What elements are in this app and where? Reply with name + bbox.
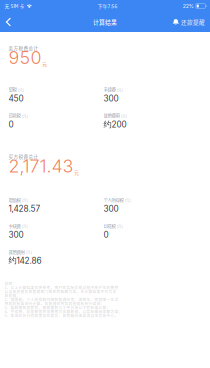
staticText: 元 — [42, 61, 47, 67]
staticText: 无 SIM 卡 — [4, 2, 24, 9]
staticText: 下午7:56 — [98, 2, 118, 10]
staticText: 1,428.57 — [8, 204, 40, 214]
staticText: 0 — [8, 120, 13, 130]
staticText: 印花税 — [8, 112, 20, 119]
staticText: 950 — [8, 47, 41, 68]
staticText: (元) — [117, 88, 123, 93]
staticText: 300 — [8, 230, 23, 240]
staticText: 还款提醒 — [181, 18, 205, 26]
staticText: 其他费用 — [103, 112, 119, 119]
staticText: 约142.86 — [8, 255, 41, 266]
staticText: 300 — [103, 94, 118, 104]
staticText: 以当地房屋交易管理部门核定的数额为准，本计算结果不作为交 — [4, 289, 116, 294]
button[interactable]: 还款提醒 — [172, 12, 210, 32]
staticText: 手续费 — [8, 222, 20, 229]
staticText: 1、以上计算结果仅供参考，用户在实际交易过程中所产生的费用 — [4, 285, 118, 290]
staticText: 约200 — [103, 119, 126, 130]
staticText: (元) — [22, 198, 28, 203]
staticText: 2、增值税、个人所得税均按照普通住宅、满两年、家庭唯一生活 — [4, 297, 118, 302]
staticText: 其他费用 — [8, 248, 24, 255]
staticText: 4、手续费、印花税等杂项费用为估算数值，以实际缴纳金额为准； — [4, 309, 122, 314]
staticText: (元) — [22, 114, 28, 119]
staticText: 说明： — [4, 281, 16, 286]
staticText: 3、契税按照首套房、建筑面积九十平方米以下的标准计算； — [4, 305, 110, 310]
staticText: 买方税费总计 — [8, 153, 38, 160]
staticText: 契税 — [8, 86, 16, 93]
staticText: 0 — [103, 230, 108, 240]
staticText: 用房的标准进行计算，非普通住宅及其他情形另行咨询； — [4, 301, 104, 306]
staticText: 增值税 — [8, 196, 20, 203]
staticText: (元) — [121, 114, 127, 119]
staticText: 2,171.43 — [8, 155, 73, 177]
staticText: 5、各地区执行的政策存在差异，如有疑问请咨询当地交易中心。 — [4, 313, 118, 318]
staticText: 22% — [183, 3, 194, 9]
staticText: 300 — [103, 204, 118, 214]
staticText: 计算结果 — [93, 18, 117, 26]
staticText: 卖方税费总计 — [8, 45, 38, 51]
staticText: 手续费 — [103, 86, 115, 93]
staticText: 450 — [8, 94, 23, 104]
button[interactable]: 返回 — [0, 12, 21, 32]
staticText: (元) — [125, 198, 131, 203]
staticText: (元) — [117, 224, 123, 229]
staticText: 印花税 — [103, 222, 115, 229]
staticText: (元) — [18, 88, 24, 93]
staticText: (元) — [26, 250, 32, 255]
staticText: 易依据； — [4, 293, 20, 298]
staticText: (元) — [22, 224, 28, 229]
staticText: 个人所得税 — [103, 196, 123, 203]
staticText: 元 — [74, 169, 79, 176]
